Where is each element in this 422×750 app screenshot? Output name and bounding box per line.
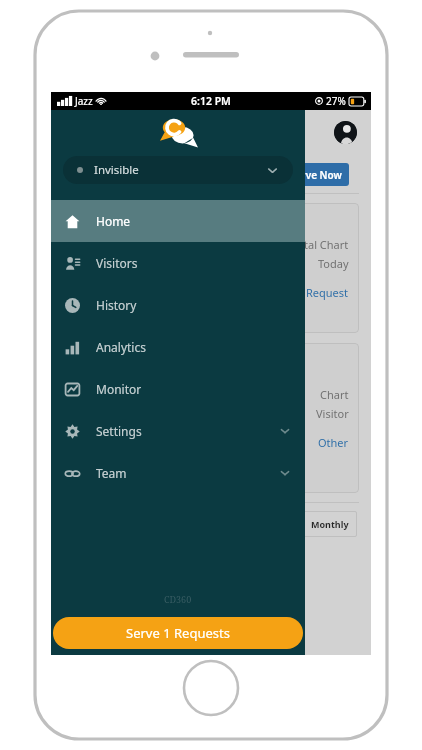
staticText: Today [318,256,349,271]
staticText: Team [96,465,127,481]
staticText: Settings [96,423,142,439]
button[interactable]: Monitor [51,368,305,410]
staticText: Request [306,285,349,300]
staticText: Other [318,435,349,450]
staticText: Analytics [96,339,146,355]
button[interactable]: Invisible [63,156,293,184]
staticText: History [96,297,137,313]
button[interactable]: Profile [334,121,357,144]
staticText: Home [96,213,131,229]
button[interactable]: Monthly [303,511,357,537]
button[interactable]: Team [51,452,305,494]
staticText: Chart [320,387,349,402]
staticText: CD360 [164,593,192,605]
staticText: Serve Now [290,168,342,182]
staticText: Visitors [96,255,138,271]
staticText: Total Chart [292,237,349,252]
staticText: Monitor [96,381,142,397]
staticText: Jazz [75,94,93,108]
staticText: Monthly [311,518,349,530]
staticText: Visitor [316,406,349,421]
button[interactable]: Settings [51,410,305,452]
button[interactable]: Analytics [51,326,305,368]
staticText: 6:12 PM [191,94,231,108]
button[interactable]: Logo [158,118,198,148]
staticText: Invisible [94,162,139,178]
button[interactable]: Visitors [51,242,305,284]
staticText: 27% [326,94,346,108]
staticText: Serve 1 Requests [126,624,230,642]
button[interactable]: Serve 1 Requests [53,617,303,649]
button[interactable]: History [51,284,305,326]
button[interactable]: Home [51,200,305,242]
button[interactable]: Serve Now [283,163,349,186]
